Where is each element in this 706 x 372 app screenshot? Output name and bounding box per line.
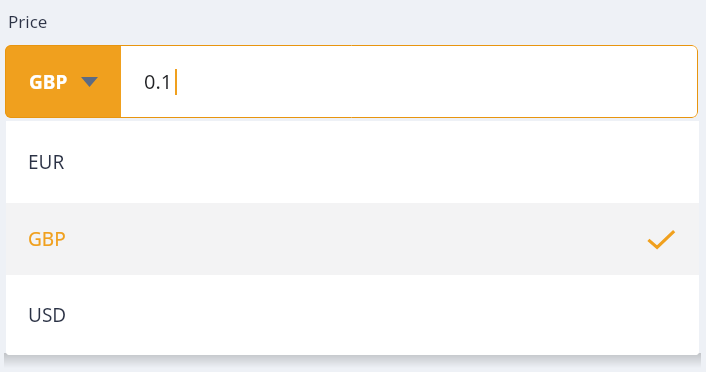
button[interactable]: GBP bbox=[5, 45, 121, 118]
staticText: Price bbox=[8, 10, 48, 33]
staticText: GBP bbox=[28, 226, 66, 252]
button[interactable]: GBP bbox=[6, 203, 699, 275]
staticText: 0.1 bbox=[144, 68, 173, 95]
staticText: USD bbox=[28, 302, 67, 328]
button[interactable]: USD bbox=[6, 275, 699, 355]
other: Open currency list bbox=[81, 77, 98, 87]
staticText: GBP bbox=[29, 69, 68, 95]
staticText: EUR bbox=[28, 149, 65, 175]
button[interactable]: EUR bbox=[6, 121, 699, 203]
button[interactable]: 0.1 bbox=[121, 45, 698, 118]
other: Selected bbox=[647, 229, 675, 250]
